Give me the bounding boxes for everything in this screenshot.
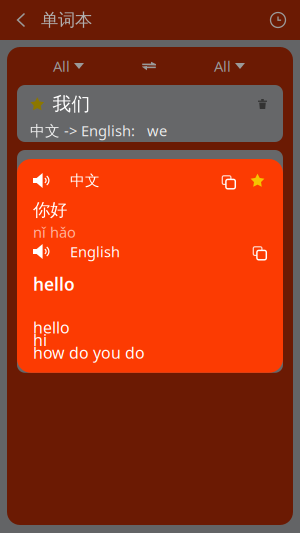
- button[interactable]: All: [204, 53, 255, 79]
- staticText: hello: [33, 272, 75, 295]
- button[interactable]: Speak Chinese: [33, 173, 53, 188]
- staticText: 你好: [33, 199, 67, 221]
- button[interactable]: Unfavourite: [250, 173, 265, 188]
- staticText: 中文: [70, 171, 100, 189]
- staticText: English: [70, 242, 120, 261]
- button[interactable]: Copy English: [251, 244, 265, 259]
- staticText: hi: [33, 329, 47, 350]
- staticText: 中文 -> English: we: [30, 121, 167, 140]
- staticText: All: [53, 56, 70, 76]
- button[interactable]: Copy Chinese: [220, 173, 234, 188]
- staticText: All: [214, 56, 231, 76]
- button[interactable]: History: [260, 0, 296, 40]
- staticText: hello: [33, 317, 70, 338]
- button[interactable]: Speak English: [33, 244, 53, 259]
- staticText: how do you do: [33, 342, 145, 363]
- button[interactable]: Back: [6, 0, 36, 40]
- button[interactable]: 我们: [17, 85, 283, 142]
- staticText: nǐ hǎo: [33, 222, 76, 242]
- staticText: 我们: [52, 92, 90, 115]
- button[interactable]: All: [43, 53, 94, 79]
- button[interactable]: Swap languages: [129, 53, 169, 79]
- staticText: 单词本: [41, 9, 92, 31]
